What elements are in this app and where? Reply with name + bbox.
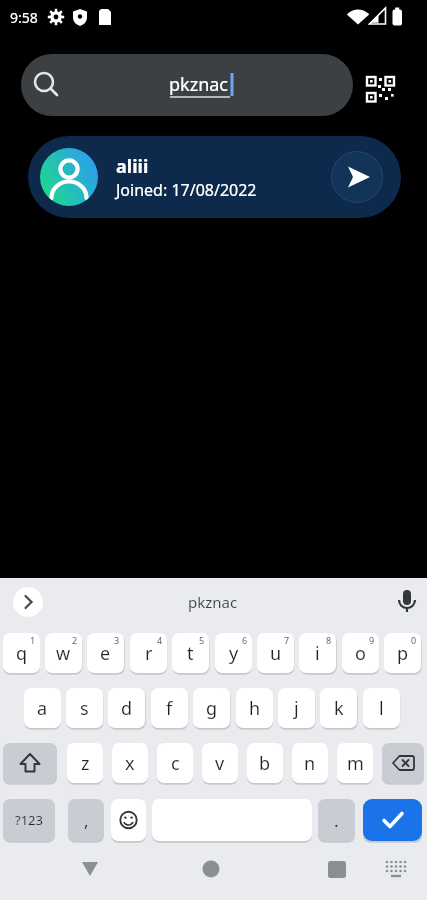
staticText: e	[100, 641, 111, 666]
button[interactable]: o	[342, 633, 379, 673]
button[interactable]	[363, 799, 422, 841]
button[interactable]: b	[247, 743, 283, 783]
button[interactable]: k	[320, 688, 357, 728]
button[interactable]: x	[112, 743, 148, 783]
button[interactable]: i	[299, 633, 336, 673]
staticText: c	[171, 751, 180, 776]
staticText: 5	[199, 634, 205, 646]
staticText: x	[125, 751, 135, 776]
staticText: Joined: 17/08/2022	[116, 179, 257, 201]
staticText: 7	[284, 634, 290, 646]
button[interactable]	[13, 587, 43, 617]
button[interactable]: t	[172, 633, 209, 673]
staticText: pkznac	[188, 592, 238, 612]
staticText: 2	[72, 634, 78, 646]
staticText: h	[249, 696, 261, 721]
staticText: 4	[157, 634, 163, 646]
staticText: y	[229, 641, 239, 666]
button[interactable]: y	[215, 633, 252, 673]
staticText: l	[379, 696, 384, 721]
staticText: i	[315, 641, 320, 666]
button[interactable]	[111, 799, 146, 841]
staticText: 9:58	[10, 8, 38, 27]
staticText: t	[187, 641, 194, 666]
staticText: 6	[242, 634, 248, 646]
button[interactable]: h	[236, 688, 273, 728]
button[interactable]: j	[278, 688, 315, 728]
staticText: r	[145, 641, 153, 666]
button[interactable]: d	[108, 688, 145, 728]
button[interactable]: r	[130, 633, 167, 673]
staticText: ?123	[15, 811, 43, 829]
staticText: aliii	[116, 154, 149, 179]
staticText: 9	[369, 634, 375, 646]
staticText: b	[259, 751, 271, 776]
button[interactable]	[392, 586, 422, 616]
button[interactable]: ,	[68, 799, 104, 841]
button[interactable]: z	[67, 743, 103, 783]
staticText: f	[166, 696, 173, 721]
staticText: p	[397, 641, 409, 666]
staticText: g	[206, 696, 218, 721]
button[interactable]: ?123	[3, 799, 55, 841]
button[interactable]: p	[384, 633, 421, 673]
button[interactable]: u	[257, 633, 294, 673]
button[interactable]	[3, 743, 57, 783]
button[interactable]: a	[24, 688, 61, 728]
staticText: m	[347, 751, 364, 776]
staticText: 0	[411, 634, 417, 646]
staticText: ,	[84, 809, 89, 832]
staticText: n	[304, 751, 316, 776]
button[interactable]: g	[193, 688, 230, 728]
staticText: w	[56, 641, 71, 666]
button[interactable]: v	[202, 743, 238, 783]
staticText: o	[355, 641, 366, 666]
button[interactable]: c	[157, 743, 193, 783]
button[interactable]: m	[337, 743, 373, 783]
staticText: d	[121, 696, 133, 721]
staticText: .	[334, 809, 339, 832]
staticText: pkznac	[169, 72, 229, 97]
button[interactable]: e	[87, 633, 124, 673]
staticText: u	[270, 641, 282, 666]
button[interactable]: f	[151, 688, 188, 728]
button[interactable]: l	[363, 688, 400, 728]
staticText: s	[80, 696, 89, 721]
button[interactable]	[331, 151, 383, 203]
button[interactable]	[358, 68, 402, 110]
staticText: j	[294, 696, 299, 721]
button[interactable]: w	[45, 633, 82, 673]
staticText: 3	[114, 634, 120, 646]
button[interactable]: q	[3, 633, 40, 673]
staticText: z	[81, 751, 90, 776]
staticText: v	[215, 751, 225, 776]
button[interactable]: pkznac	[21, 54, 353, 116]
button[interactable]	[382, 743, 424, 783]
staticText: k	[334, 696, 344, 721]
button[interactable]: s	[66, 688, 103, 728]
button[interactable]: aliii	[28, 136, 401, 218]
staticText: q	[16, 641, 28, 666]
staticText: a	[37, 696, 48, 721]
staticText: 8	[326, 634, 332, 646]
button[interactable]: .	[318, 799, 355, 841]
staticText: 1	[30, 634, 36, 646]
button[interactable]: n	[292, 743, 328, 783]
